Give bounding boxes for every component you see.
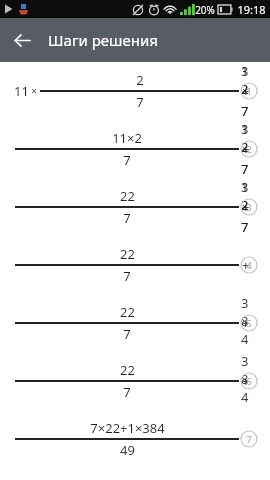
staticText: 7 xyxy=(123,383,131,401)
button[interactable]: Step 2 xyxy=(240,140,258,158)
button[interactable]: 22 xyxy=(0,236,270,294)
button[interactable]: 11 xyxy=(0,62,270,120)
button[interactable]: Step 6 xyxy=(240,372,258,390)
staticText: 7 xyxy=(123,209,131,227)
button[interactable]: Back xyxy=(4,22,40,58)
staticText: 4 xyxy=(246,259,252,271)
button[interactable]: Step 1 xyxy=(240,82,258,100)
staticText: 7 xyxy=(136,93,144,111)
staticText: 11×2 xyxy=(112,129,142,147)
button[interactable]: 22 xyxy=(0,178,270,236)
staticText: × xyxy=(31,84,37,98)
staticText: 22 xyxy=(120,361,135,379)
staticText: 7 xyxy=(123,267,131,285)
button[interactable]: Step 3 xyxy=(240,198,258,216)
staticText: 22 xyxy=(120,245,135,263)
staticText: 22 xyxy=(120,303,135,321)
staticText: 3 xyxy=(246,201,252,213)
staticText: 2 xyxy=(136,71,144,89)
button[interactable]: Step 5 xyxy=(240,314,258,332)
button[interactable]: Step 7 xyxy=(240,430,258,448)
button[interactable]: Step 4 xyxy=(240,256,258,274)
button[interactable]: 22 xyxy=(0,352,270,410)
staticText: Шаги решения xyxy=(48,30,158,50)
staticText: 7 xyxy=(246,433,252,445)
button[interactable]: 22 xyxy=(0,294,270,352)
staticText: 20% xyxy=(195,3,215,17)
button[interactable]: 11×2 xyxy=(0,120,270,178)
staticText: 22 xyxy=(120,187,135,205)
staticText: 49 xyxy=(120,441,135,459)
staticText: 5 xyxy=(246,317,252,329)
staticText: 7 xyxy=(123,325,131,343)
staticText: 1 xyxy=(246,85,252,97)
staticText: 19:18 xyxy=(237,2,266,17)
staticText: 7×22+1×384 xyxy=(90,419,165,437)
staticText: 7 xyxy=(123,151,131,169)
staticText: 6 xyxy=(246,375,252,387)
staticText: 11 xyxy=(14,82,29,100)
button[interactable]: 7×22+1×384 xyxy=(0,410,270,468)
staticText: 2 xyxy=(246,143,252,155)
